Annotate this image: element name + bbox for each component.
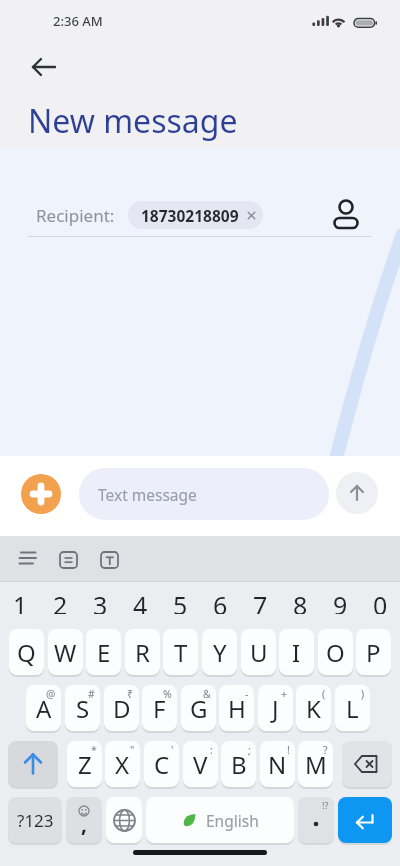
staticText: R	[135, 636, 150, 669]
staticText: '	[171, 743, 174, 757]
button[interactable]: X	[105, 741, 140, 787]
button[interactable]: Q	[9, 629, 44, 675]
button[interactable]: F	[142, 685, 177, 731]
button[interactable]: M	[298, 741, 333, 787]
staticText: *	[91, 743, 97, 757]
staticText: #	[88, 687, 95, 701]
button[interactable]: 3	[80, 588, 120, 614]
button[interactable]: O	[318, 629, 353, 675]
staticText: G	[190, 692, 208, 725]
button[interactable]: N	[260, 741, 295, 787]
staticText: 4	[133, 588, 148, 614]
staticText: Y	[213, 636, 227, 669]
staticText: V	[193, 748, 208, 781]
staticText: Q	[17, 636, 36, 669]
button[interactable]: 8	[280, 588, 320, 614]
button[interactable]: 5	[160, 588, 200, 614]
button[interactable]: I	[279, 629, 314, 675]
staticText: ,	[81, 810, 87, 839]
button[interactable]	[328, 193, 364, 233]
button[interactable]: Text message	[79, 468, 329, 520]
staticText: ?	[323, 743, 328, 757]
staticText: ₹	[127, 687, 134, 701]
button[interactable]: S	[65, 685, 100, 731]
staticText: W	[54, 636, 77, 669]
button[interactable]: E	[86, 629, 121, 675]
staticText: Z	[78, 748, 92, 781]
button[interactable]: 6	[200, 588, 240, 614]
staticText: C	[154, 748, 170, 781]
button[interactable]: H	[219, 685, 254, 731]
button[interactable]: 2	[40, 588, 80, 614]
button[interactable]: B	[221, 741, 256, 787]
staticText: +	[281, 687, 288, 701]
button[interactable]: English	[146, 797, 294, 843]
staticText: Text message	[98, 484, 197, 505]
staticText: X	[115, 748, 130, 781]
button[interactable]	[21, 474, 61, 514]
button[interactable]: 1	[0, 588, 40, 614]
staticText: 9	[333, 588, 348, 614]
staticText: L	[346, 692, 359, 725]
staticText: English	[206, 810, 259, 831]
staticText: 8	[293, 588, 308, 614]
staticText: 1	[13, 588, 28, 614]
button[interactable]	[8, 741, 58, 787]
button[interactable]: 7	[240, 588, 280, 614]
button[interactable]: !?	[298, 797, 334, 843]
button[interactable]: A	[26, 685, 61, 731]
staticText: 2:36 AM	[53, 12, 173, 30]
staticText: @	[46, 687, 56, 701]
staticText: ?123	[17, 809, 54, 832]
staticText: ;	[248, 743, 251, 757]
button[interactable]: K	[296, 685, 331, 731]
button[interactable]: C	[144, 741, 179, 787]
button[interactable]: 9	[320, 588, 360, 614]
button[interactable]	[106, 797, 142, 843]
staticText: 3	[93, 588, 108, 614]
staticText: "	[130, 743, 135, 757]
button[interactable]: Z	[67, 741, 102, 787]
button[interactable]: ,	[66, 797, 102, 843]
staticText: K	[306, 692, 321, 725]
staticText: 7	[253, 588, 268, 614]
staticText: H	[228, 692, 246, 725]
button[interactable]	[336, 472, 378, 514]
button[interactable]	[342, 741, 392, 787]
staticText: %	[163, 687, 172, 701]
staticText: !	[287, 743, 290, 757]
staticText: E	[97, 636, 111, 669]
button[interactable]: Y	[202, 629, 237, 675]
button[interactable]: P	[356, 629, 391, 675]
button[interactable]: U	[241, 629, 276, 675]
staticText: A	[36, 692, 52, 725]
button[interactable]: 18730218809	[128, 201, 263, 229]
button[interactable]: D	[104, 685, 139, 731]
staticText: B	[231, 748, 247, 781]
staticText: U	[250, 636, 268, 669]
button[interactable]: G	[181, 685, 216, 731]
button[interactable]	[338, 797, 392, 843]
button[interactable]: R	[125, 629, 160, 675]
button[interactable]: V	[183, 741, 218, 787]
staticText: 5	[173, 588, 188, 614]
button[interactable]: J	[258, 685, 293, 731]
staticText: )	[361, 687, 365, 701]
staticText: Recipient:	[36, 204, 115, 227]
staticText: D	[113, 692, 131, 725]
button[interactable]: 0	[360, 588, 400, 614]
staticText: F	[153, 692, 166, 725]
button[interactable]: W	[48, 629, 83, 675]
button[interactable]	[20, 52, 64, 82]
button[interactable]: T	[163, 629, 198, 675]
button[interactable]: L	[335, 685, 370, 731]
staticText: N	[268, 748, 287, 781]
staticText: J	[272, 692, 279, 725]
staticText: I	[292, 636, 301, 669]
button[interactable]: ?123	[8, 797, 62, 843]
staticText: 18730218809	[141, 205, 239, 226]
button[interactable]: 4	[120, 588, 160, 614]
staticText: O	[326, 636, 345, 669]
staticText: S	[76, 692, 90, 725]
staticText: &	[203, 687, 211, 701]
